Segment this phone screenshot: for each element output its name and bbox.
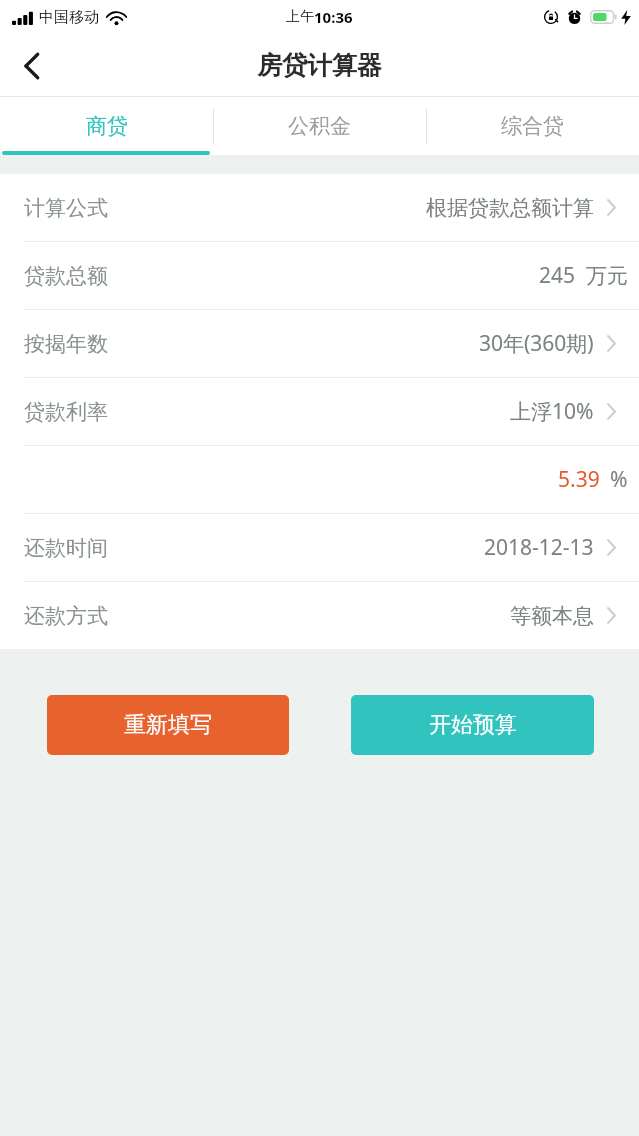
staticText: 开始预算	[429, 711, 517, 739]
button[interactable]: 计算公式	[0, 174, 639, 241]
button[interactable]: 5.39	[0, 446, 639, 513]
staticText: 公积金	[288, 113, 351, 139]
button[interactable]: 重新填写	[47, 695, 289, 755]
staticText: 30年(360期)	[479, 329, 594, 358]
staticText: %	[610, 465, 628, 494]
staticText: 10:36	[314, 7, 353, 27]
staticText: 贷款利率	[24, 399, 108, 425]
staticText: 商贷	[86, 113, 128, 139]
button[interactable]: 按揭年数	[0, 310, 639, 377]
staticText: 还款时间	[24, 535, 108, 561]
button[interactable]: 商贷	[0, 97, 213, 155]
button[interactable]: 贷款总额	[0, 242, 639, 309]
staticText: 2018-12-13	[484, 533, 594, 562]
button[interactable]: 贷款利率	[0, 378, 639, 445]
staticText: 按揭年数	[24, 331, 108, 357]
staticText: 中国移动	[39, 8, 99, 27]
staticText: 万元	[586, 263, 628, 289]
staticText: 计算公式	[24, 195, 108, 221]
staticText: 还款方式	[24, 603, 108, 629]
staticText: 贷款总额	[24, 263, 108, 289]
staticText: 等额本息	[510, 603, 594, 629]
button[interactable]: 还款时间	[0, 514, 639, 581]
staticText: 上浮10%	[510, 397, 594, 426]
staticText: 综合贷	[501, 113, 564, 139]
button[interactable]: Back	[0, 34, 64, 97]
staticText: 上午	[286, 8, 314, 26]
button[interactable]: 开始预算	[351, 695, 594, 755]
button[interactable]: 还款方式	[0, 582, 639, 649]
staticText: 5.39	[558, 465, 600, 494]
button[interactable]: 综合贷	[426, 97, 639, 155]
staticText: 根据贷款总额计算	[426, 195, 594, 221]
staticText: 重新填写	[124, 711, 212, 739]
button[interactable]: 公积金	[213, 97, 426, 155]
staticText: 房贷计算器	[257, 50, 382, 81]
staticText: 245	[539, 261, 576, 290]
